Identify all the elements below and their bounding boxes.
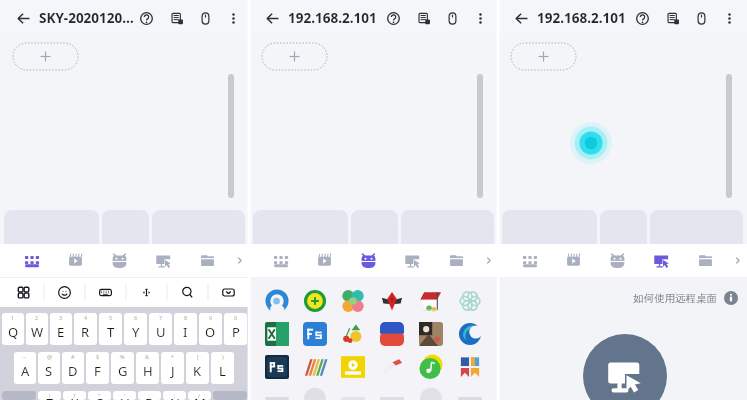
button[interactable]: App 12 (258, 350, 296, 383)
button[interactable]: More tools (229, 244, 249, 277)
button[interactable]: App 13 (296, 350, 334, 383)
button[interactable]: $ (86, 352, 109, 384)
button[interactable]: ) (211, 352, 234, 384)
button[interactable]: App 15 (372, 350, 411, 383)
button[interactable]: 9 (199, 313, 222, 345)
button[interactable]: Search (167, 277, 208, 307)
button[interactable]: App 9 (372, 317, 411, 350)
button[interactable]: 6 (124, 313, 147, 345)
button[interactable]: ' (113, 391, 136, 400)
button[interactable]: ( (186, 352, 209, 384)
button[interactable]: Add session (511, 43, 576, 70)
button[interactable]: Files (434, 244, 478, 277)
button[interactable]: & (136, 352, 159, 384)
button[interactable]: Help (630, 6, 655, 31)
button[interactable]: More tools (478, 244, 498, 277)
button[interactable]: Back (511, 8, 532, 29)
button[interactable]: Help (381, 6, 406, 31)
button[interactable]: Add session (13, 43, 78, 70)
button[interactable]: Remote desktop (390, 244, 434, 277)
button[interactable]: App 2 (334, 284, 372, 317)
button[interactable]: App 0 (258, 284, 296, 317)
button[interactable]: Media (53, 244, 97, 277)
button[interactable]: 4 (74, 313, 97, 345)
button[interactable]: # (62, 352, 84, 384)
button[interactable]: Keyboard (9, 244, 53, 277)
button[interactable]: App 7 (296, 317, 334, 350)
button[interactable]: More options (221, 6, 246, 31)
button[interactable]: More options (468, 6, 493, 31)
button[interactable]: App 21 (372, 397, 411, 400)
button[interactable]: Cursor (126, 277, 167, 307)
button[interactable]: 7 (149, 313, 172, 345)
button[interactable]: App 18 (258, 397, 296, 400)
button[interactable]: Android apps (97, 244, 141, 277)
button[interactable]: Files (185, 244, 229, 277)
button[interactable]: Add session (262, 43, 327, 70)
button[interactable]: 5 (99, 313, 122, 345)
button[interactable]: ~ (14, 352, 36, 384)
button[interactable]: Back (13, 8, 34, 29)
button[interactable]: App 14 (334, 350, 372, 383)
button[interactable]: ? (63, 391, 86, 400)
button[interactable]: Hide keyboard (208, 277, 249, 307)
button[interactable]: 1 (2, 313, 24, 345)
button[interactable]: Media (302, 244, 346, 277)
button[interactable]: / (188, 391, 211, 400)
button[interactable]: Mouse (689, 6, 714, 31)
button[interactable]: Keyboard (258, 244, 302, 277)
button[interactable]: Remote desktop (141, 244, 185, 277)
button[interactable]: Shift (2, 391, 36, 400)
button[interactable]: Keyboard (85, 277, 126, 307)
button[interactable]: App 4 (411, 284, 450, 317)
button[interactable]: Apps (3, 277, 44, 307)
button[interactable]: App 23 (450, 397, 489, 400)
button[interactable]: Keyboard (507, 244, 551, 277)
button[interactable]: % (111, 352, 134, 384)
button[interactable]: App 6 (258, 317, 296, 350)
button[interactable]: Mouse (193, 6, 218, 31)
button[interactable]: Backspace (213, 391, 247, 400)
button[interactable]: App 19 (296, 397, 334, 400)
button[interactable]: Remote desktop (639, 244, 683, 277)
button[interactable]: App 5 (450, 284, 489, 317)
button[interactable]: Help (134, 6, 159, 31)
button[interactable]: Android apps (346, 244, 390, 277)
button[interactable]: App 3 (372, 284, 411, 317)
button[interactable]: App 10 (411, 317, 450, 350)
button[interactable]: App 11 (450, 317, 489, 350)
button[interactable]: Files (683, 244, 727, 277)
button[interactable]: Emoji (44, 277, 85, 307)
button[interactable]: * (161, 352, 184, 384)
button[interactable]: " (88, 391, 111, 400)
button[interactable]: App 16 (411, 350, 450, 383)
button[interactable]: More tools (727, 244, 747, 277)
button[interactable]: Connect remote desktop (583, 334, 667, 400)
button[interactable]: 0 (224, 313, 247, 345)
button[interactable]: Android apps (595, 244, 639, 277)
button[interactable]: : (138, 391, 161, 400)
button[interactable]: App 20 (334, 397, 372, 400)
button[interactable]: Mouse (440, 6, 465, 31)
button[interactable]: Keyboard input (412, 6, 437, 31)
button[interactable]: @ (38, 352, 60, 384)
button[interactable]: Media (551, 244, 595, 277)
button[interactable]: Keyboard input (165, 6, 190, 31)
button[interactable]: App 8 (334, 317, 372, 350)
button[interactable]: 如何使用远程桌面 (633, 291, 738, 305)
button[interactable]: ; (163, 391, 186, 400)
button[interactable]: Back (262, 8, 283, 29)
button[interactable]: App 17 (450, 350, 489, 383)
button[interactable]: 3 (50, 313, 72, 345)
button[interactable]: More options (717, 6, 742, 31)
button[interactable]: 2 (26, 313, 48, 345)
button[interactable]: Keyboard input (661, 6, 686, 31)
